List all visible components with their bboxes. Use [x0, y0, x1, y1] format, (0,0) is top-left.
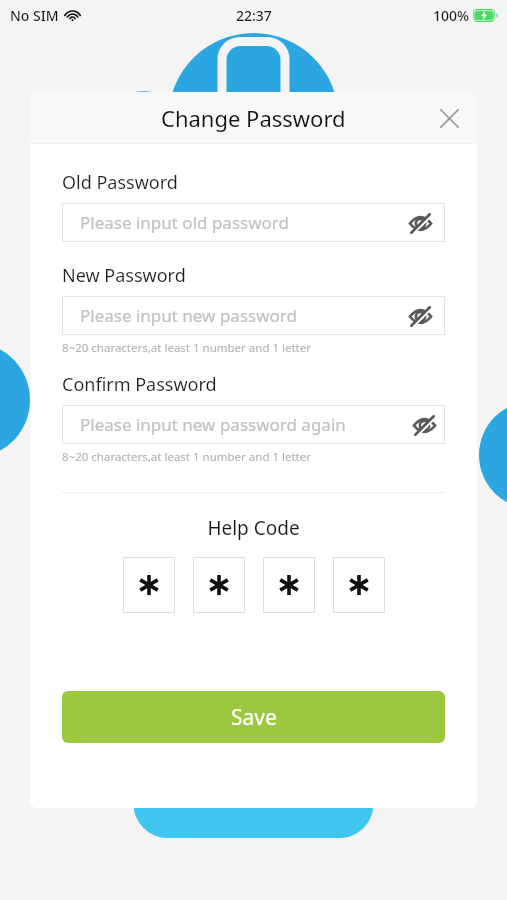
- button[interactable]: [333, 557, 385, 613]
- staticText: Change Password: [161, 103, 346, 133]
- staticText: Please input new password: [80, 304, 405, 327]
- staticText: Old Password: [62, 170, 178, 195]
- button[interactable]: Show password: [405, 208, 435, 238]
- staticText: Help Code: [62, 515, 445, 541]
- staticText: New Password: [62, 263, 186, 288]
- staticText: Please input old password: [80, 211, 405, 234]
- staticText: No SIM: [10, 6, 59, 25]
- button[interactable]: [263, 557, 315, 613]
- staticText: 22:37: [236, 6, 272, 25]
- button[interactable]: Please input old password: [62, 203, 445, 242]
- staticText: 8~20 characters,at least 1 number and 1 …: [62, 449, 312, 465]
- button[interactable]: Show password: [409, 410, 439, 440]
- staticText: Save: [231, 703, 277, 732]
- button[interactable]: [193, 557, 245, 613]
- button[interactable]: Please input new password again: [62, 405, 445, 444]
- button[interactable]: Show password: [405, 301, 435, 331]
- button[interactable]: [123, 557, 175, 613]
- button[interactable]: Please input new password: [62, 296, 445, 335]
- staticText: Please input new password again: [80, 413, 409, 436]
- staticText: 100%: [433, 6, 469, 25]
- button[interactable]: Close: [429, 98, 469, 138]
- staticText: 8~20 characters,at least 1 number and 1 …: [62, 340, 312, 356]
- staticText: Confirm Password: [62, 372, 217, 397]
- button[interactable]: Save: [62, 691, 445, 743]
